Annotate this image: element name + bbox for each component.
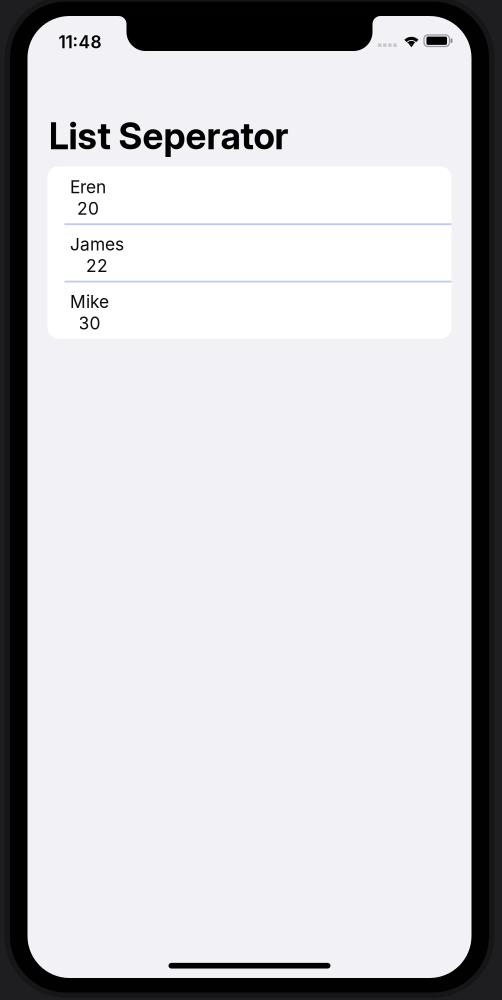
staticText: James — [70, 234, 124, 255]
staticText: 22 — [86, 255, 108, 276]
staticText: 20 — [77, 198, 99, 219]
staticText: Eren — [70, 176, 106, 197]
staticText: Mike — [70, 291, 109, 312]
button[interactable]: Eren — [47, 166, 451, 224]
staticText: 30 — [78, 313, 100, 334]
button[interactable]: James — [47, 224, 451, 281]
button[interactable]: Mike — [47, 281, 451, 339]
staticText: 11:48 — [58, 31, 101, 52]
staticText: List Seperator — [48, 114, 288, 158]
